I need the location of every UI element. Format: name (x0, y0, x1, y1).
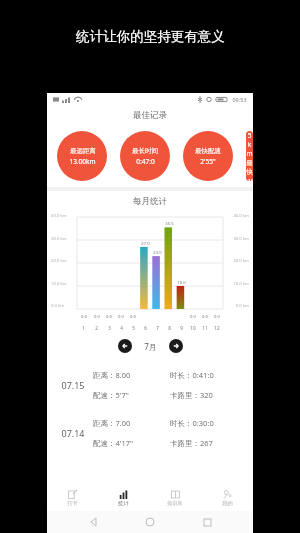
staticText: 07.15 (53, 379, 93, 391)
staticText: 23.0 (153, 250, 162, 256)
button[interactable]: Next month (169, 339, 183, 353)
staticText: 4'1" (246, 177, 253, 181)
staticText: 0.0 (130, 314, 136, 320)
staticText: 0.0 (202, 314, 208, 320)
staticText: 最长时间 (132, 147, 158, 155)
staticText: 0.0 (81, 314, 87, 320)
staticText: 知识库 (167, 500, 183, 507)
staticText: 10 (190, 325, 196, 331)
staticText: 12 (214, 325, 220, 331)
button[interactable]: 知识库 (149, 485, 201, 511)
staticText: 卡路里：320 (170, 390, 247, 400)
staticText: 1 (82, 325, 85, 331)
staticText: 2 (95, 325, 98, 331)
staticText: 最佳记录 (133, 110, 167, 121)
button[interactable]: Recents (197, 512, 217, 532)
staticText: 配速：5'7" (93, 390, 170, 400)
staticText: 打卡 (67, 500, 78, 507)
staticText: 0.0 (106, 314, 112, 320)
staticText: 0.0 (214, 314, 220, 320)
staticText: 0:47:0 (136, 157, 155, 166)
staticText: 10.0 km (51, 281, 76, 287)
staticText: 10.0 km (224, 281, 249, 287)
staticText: 7月 (144, 341, 157, 352)
staticText: 5km最快 (246, 131, 253, 175)
button[interactable]: Home (140, 512, 160, 532)
staticText: 20.0 km (51, 258, 76, 264)
button[interactable]: 统计 (98, 485, 149, 511)
staticText: 10.0 (177, 280, 186, 286)
staticText: 9 (180, 325, 183, 331)
staticText: 30.0 km (51, 236, 76, 242)
staticText: 11 (202, 325, 208, 331)
button[interactable]: 07.14 (47, 409, 253, 457)
staticText: 0.0 (94, 314, 100, 320)
button[interactable]: 5km最快 (246, 131, 253, 181)
staticText: 配速：4'17" (93, 438, 170, 448)
button[interactable]: 最长时间 (120, 131, 170, 181)
staticText: 时长：0:30:0 (170, 418, 247, 428)
staticText: 每月统计 (133, 196, 167, 207)
staticText: 时长：0:41:0 (170, 370, 247, 380)
button[interactable]: 打卡 (47, 485, 98, 511)
staticText: 0.0 km (51, 303, 76, 309)
staticText: 统计 (118, 500, 129, 507)
staticText: 0.0 (190, 314, 196, 320)
staticText: 5 (132, 325, 135, 331)
button[interactable]: Back (84, 512, 104, 532)
staticText: 距离：8.00 (93, 370, 170, 380)
button[interactable]: Previous month (118, 339, 132, 353)
staticText: 统计让你的坚持更有意义 (76, 28, 225, 45)
staticText: 最远距离 (70, 147, 96, 155)
staticText: 09:53 (232, 96, 247, 103)
staticText: 7 (156, 325, 159, 331)
button[interactable]: 07.15 (47, 361, 253, 409)
staticText: 2'55" (200, 157, 216, 166)
staticText: 卡路里：267 (170, 438, 247, 448)
staticText: 20.0 km (224, 258, 249, 264)
button[interactable]: 我的 (201, 485, 253, 511)
button[interactable]: 最快配速 (183, 131, 233, 181)
staticText: 6 (144, 325, 147, 331)
staticText: 35.5 (165, 221, 174, 227)
staticText: 8 (168, 325, 171, 331)
staticText: 07.14 (53, 427, 93, 439)
staticText: 30.0 km (224, 236, 249, 242)
staticText: 40.0 km (224, 213, 249, 219)
button[interactable]: 最远距离 (57, 131, 107, 181)
staticText: 距离：7.00 (93, 418, 170, 428)
staticText: 0.0 (118, 314, 124, 320)
staticText: 0.0 km (224, 303, 249, 309)
staticText: 13.00km (69, 157, 96, 166)
staticText: 3 (108, 325, 111, 331)
staticText: 27.0 (141, 241, 150, 247)
staticText: 最快配速 (195, 147, 221, 155)
staticText: 40.0 km (51, 213, 76, 219)
staticText: 我的 (222, 500, 233, 507)
staticText: 4 (120, 325, 123, 331)
